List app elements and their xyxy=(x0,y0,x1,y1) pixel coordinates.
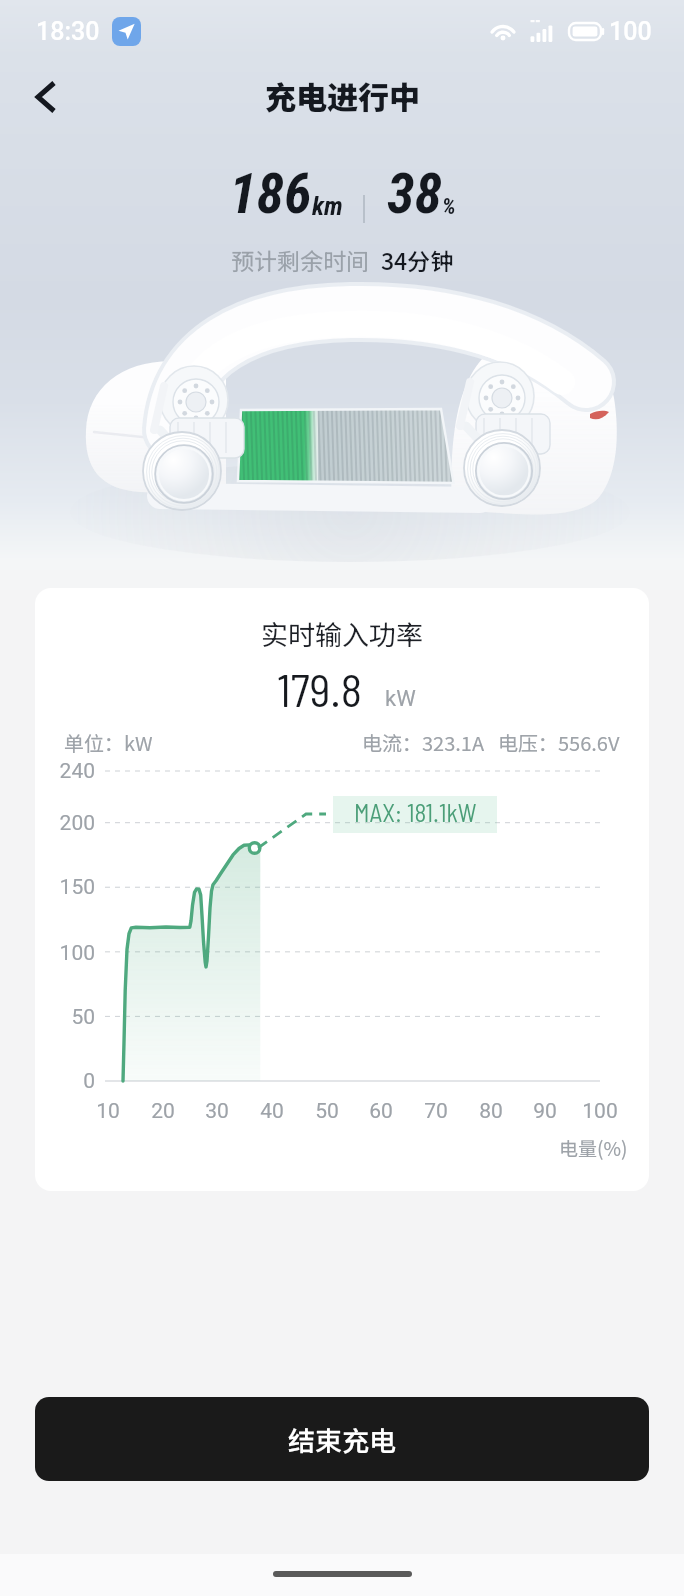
staticText: 90 xyxy=(520,1099,570,1124)
staticText: 电量(%) xyxy=(559,1134,628,1162)
staticText: 50 xyxy=(302,1099,352,1124)
staticText: 60 xyxy=(356,1099,406,1124)
button[interactable]: Back xyxy=(22,73,70,121)
staticText: 18:30 xyxy=(36,17,100,46)
staticText: kW xyxy=(385,686,416,712)
staticText: 34分钟 xyxy=(381,243,454,276)
staticText: 实时输入功率 xyxy=(35,614,649,653)
staticText: 100 xyxy=(575,1099,625,1124)
staticText: 100 xyxy=(35,941,95,966)
staticText: 0 xyxy=(35,1069,95,1094)
staticText: 电压：556.6V xyxy=(498,728,620,757)
staticText: 200 xyxy=(35,811,95,836)
staticText: 38 xyxy=(387,161,442,223)
staticText: 40 xyxy=(247,1099,297,1124)
staticText: 单位：kW xyxy=(64,728,153,757)
staticText: 10 xyxy=(83,1099,133,1124)
staticText: 186 xyxy=(229,161,312,223)
staticText: 20 xyxy=(138,1099,188,1124)
staticText: 电流：323.1A xyxy=(362,728,485,757)
staticText: 30 xyxy=(192,1099,242,1124)
staticText: 结束充电 xyxy=(288,1420,396,1459)
button[interactable]: 结束充电 xyxy=(35,1397,649,1481)
staticText: % xyxy=(442,194,456,220)
staticText: 80 xyxy=(466,1099,516,1124)
staticText: km xyxy=(312,191,343,221)
staticText: 预计剩余时间 xyxy=(231,243,369,276)
staticText: 150 xyxy=(35,875,95,900)
staticText: 179.8 xyxy=(277,662,363,716)
staticText: 充电进行中 xyxy=(265,73,420,118)
staticText: 70 xyxy=(411,1099,461,1124)
staticText: 50 xyxy=(35,1005,95,1030)
staticText: 100 xyxy=(609,17,652,46)
staticText: MAX: 181.1kW xyxy=(354,797,477,827)
staticText: 240 xyxy=(35,759,95,784)
